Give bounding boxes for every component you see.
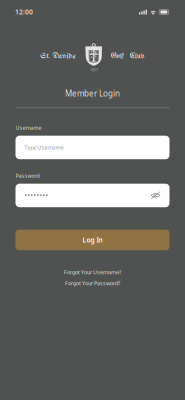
staticText: Forgot Your Password? — [65, 280, 120, 287]
staticText: Password — [15, 172, 39, 179]
staticText: Username — [15, 124, 41, 131]
button[interactable]: Log In — [15, 230, 169, 250]
staticText: Log In — [82, 235, 102, 244]
staticText: St. Davids — [40, 52, 75, 60]
button[interactable]: Forgot Your Password? — [65, 280, 120, 286]
staticText: Golf Club — [111, 52, 145, 60]
staticText: Member Login — [65, 88, 120, 99]
button[interactable]: Forgot Your Username? — [64, 269, 121, 275]
staticText: 1897 — [90, 67, 98, 72]
staticText: Type Username — [24, 144, 63, 151]
staticText: Forgot Your Username? — [64, 269, 121, 276]
staticText: 12:00 — [15, 8, 33, 16]
button[interactable]: Show password — [150, 191, 160, 200]
staticText: •••••••• — [24, 191, 48, 200]
